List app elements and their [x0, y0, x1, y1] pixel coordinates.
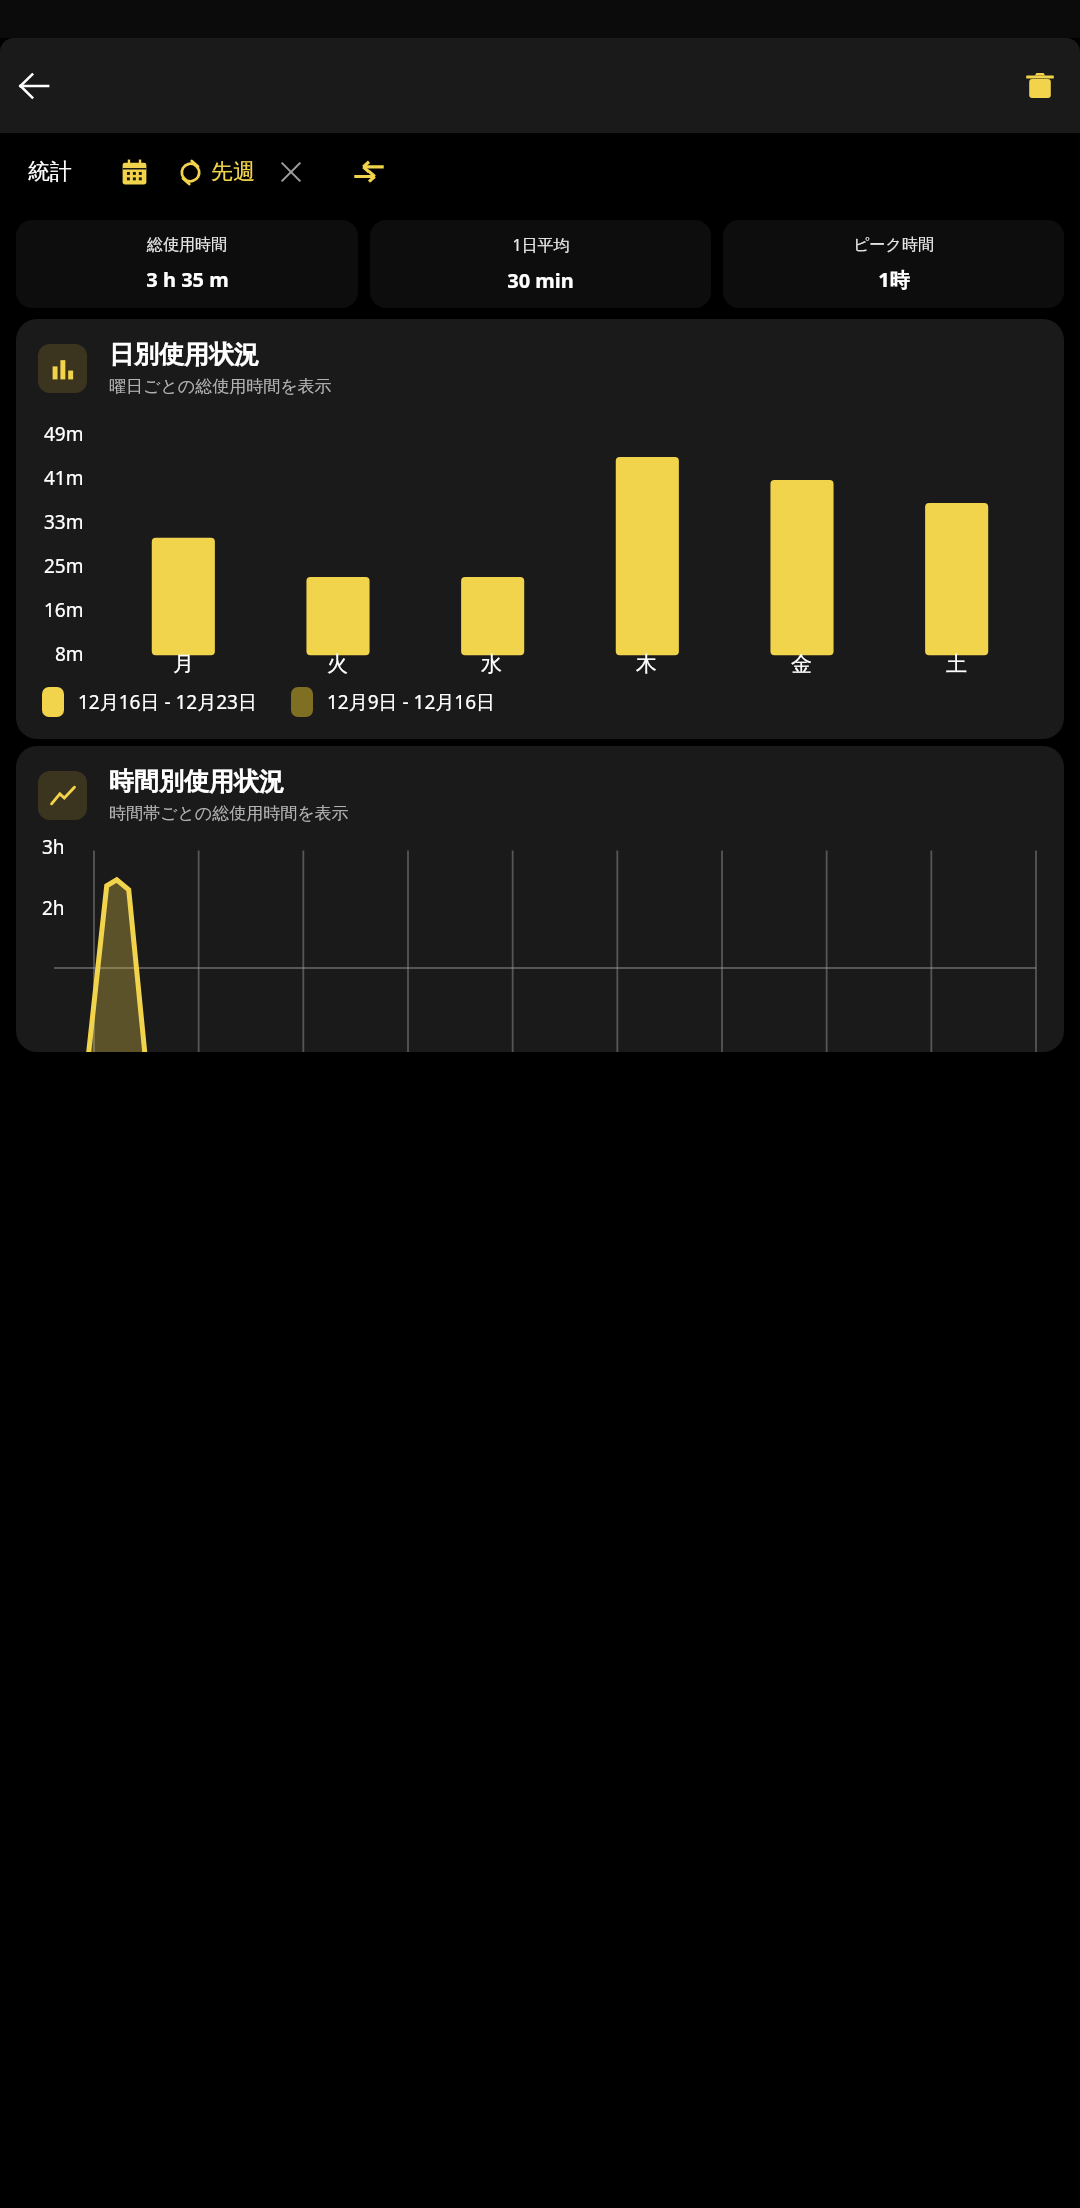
staticText: 33m: [44, 509, 84, 535]
staticText: 49m: [44, 421, 84, 447]
staticText: 先週: [211, 158, 255, 186]
button[interactable]: 総使用時間: [16, 220, 358, 308]
button[interactable]: 時間別使用状況: [16, 746, 1064, 1052]
staticText: 時間別使用状況: [109, 766, 284, 797]
staticText: 土: [946, 651, 967, 677]
staticText: 総使用時間: [147, 235, 227, 255]
staticText: 水: [481, 651, 502, 677]
staticText: 金: [791, 651, 812, 677]
staticText: 12月16日 - 12月23日: [78, 689, 257, 715]
staticText: 12月9日 - 12月16日: [327, 689, 496, 715]
staticText: 木: [636, 651, 657, 677]
staticText: 8m: [55, 641, 84, 667]
staticText: ピーク時間: [853, 235, 934, 255]
staticText: 2h: [42, 895, 65, 921]
button[interactable]: Delete: [1012, 58, 1068, 114]
button[interactable]: 1日平均: [370, 220, 711, 308]
staticText: 統計: [28, 158, 72, 186]
staticText: 1日平均: [512, 234, 570, 256]
staticText: 25m: [44, 553, 84, 579]
staticText: 41m: [44, 465, 84, 491]
button[interactable]: Clear: [269, 150, 313, 194]
staticText: 月: [173, 651, 194, 677]
staticText: 時間帯ごとの総使用時間を表示: [109, 803, 349, 824]
staticText: 火: [327, 651, 348, 677]
staticText: 1時: [878, 266, 910, 293]
button[interactable]: 先週: [178, 158, 255, 186]
staticText: 3h: [42, 834, 65, 860]
staticText: 30 min: [507, 267, 574, 294]
staticText: 日別使用状況: [109, 339, 259, 370]
staticText: 16m: [44, 597, 84, 623]
button[interactable]: 日別使用状況: [16, 319, 1064, 739]
staticText: 曜日ごとの総使用時間を表示: [109, 376, 332, 397]
button[interactable]: Back: [6, 58, 62, 114]
button[interactable]: ピーク時間: [723, 220, 1064, 308]
staticText: 3 h 35 m: [146, 266, 229, 293]
button[interactable]: Compare: [345, 148, 393, 196]
button[interactable]: Calendar: [112, 150, 156, 194]
